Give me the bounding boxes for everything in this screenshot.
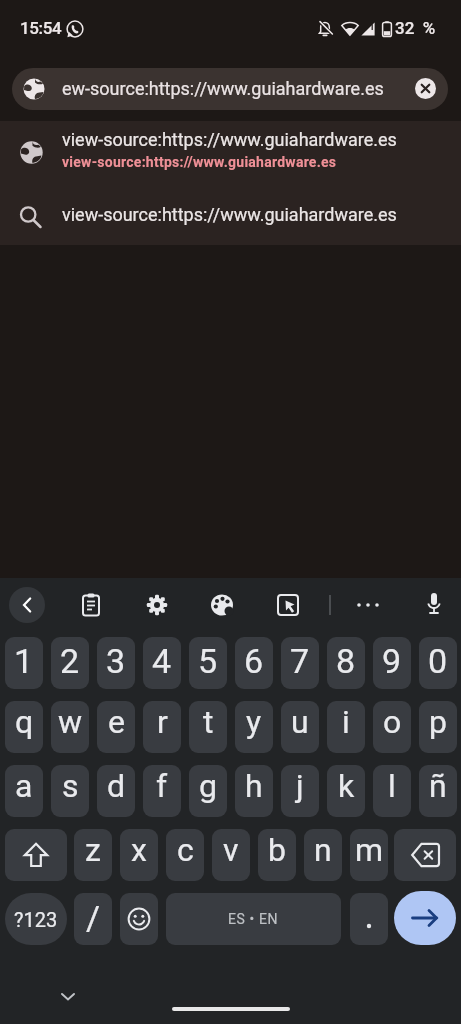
staticText: t bbox=[203, 703, 214, 741]
button[interactable]: k bbox=[327, 765, 365, 817]
button[interactable]: o bbox=[373, 701, 411, 753]
button[interactable]: view-source:https://www.guiahardware.es bbox=[0, 129, 461, 191]
button[interactable]: x bbox=[120, 829, 158, 881]
button[interactable]: 9 bbox=[373, 637, 411, 689]
staticText: j bbox=[296, 767, 304, 805]
staticText: 6 bbox=[244, 641, 264, 681]
button[interactable] bbox=[421, 591, 447, 617]
button[interactable]: ?123 bbox=[5, 893, 67, 945]
staticText: x bbox=[131, 831, 147, 869]
staticText: / bbox=[86, 898, 101, 938]
button[interactable]: 1 bbox=[5, 637, 43, 689]
staticText: 4 bbox=[152, 641, 172, 681]
button[interactable]: ew-source:https://www.guiahardware.es bbox=[12, 68, 448, 110]
button[interactable]: q bbox=[5, 701, 43, 753]
button[interactable]: f bbox=[143, 765, 181, 817]
button[interactable] bbox=[120, 893, 158, 945]
button[interactable]: 4 bbox=[143, 637, 181, 689]
button[interactable]: s bbox=[51, 765, 89, 817]
staticText: y bbox=[246, 703, 262, 741]
button[interactable]: 6 bbox=[235, 637, 273, 689]
button[interactable] bbox=[78, 592, 104, 618]
button[interactable]: ES • EN bbox=[166, 893, 341, 945]
button[interactable] bbox=[350, 893, 388, 945]
staticText: ?123 bbox=[14, 908, 58, 931]
button[interactable]: y bbox=[235, 701, 273, 753]
staticText: p bbox=[429, 703, 447, 741]
staticText: r bbox=[157, 703, 168, 741]
staticText: n bbox=[314, 831, 332, 869]
button[interactable] bbox=[144, 592, 170, 618]
button[interactable] bbox=[9, 587, 45, 623]
staticText: 3 bbox=[106, 641, 126, 681]
staticText: 7 bbox=[290, 641, 310, 681]
button[interactable]: / bbox=[74, 893, 112, 945]
staticText: a bbox=[15, 767, 33, 805]
button[interactable]: z bbox=[74, 829, 112, 881]
button[interactable]: g bbox=[189, 765, 227, 817]
button[interactable]: v bbox=[212, 829, 250, 881]
button[interactable]: n bbox=[304, 829, 342, 881]
button[interactable]: 3 bbox=[97, 637, 135, 689]
staticText: d bbox=[107, 767, 126, 805]
button[interactable]: a bbox=[5, 765, 43, 817]
button[interactable]: h bbox=[235, 765, 273, 817]
staticText: o bbox=[383, 703, 402, 741]
button[interactable] bbox=[5, 829, 67, 881]
button[interactable]: p bbox=[419, 701, 457, 753]
staticText: l bbox=[388, 767, 396, 805]
button[interactable]: e bbox=[97, 701, 135, 753]
button[interactable]: 2 bbox=[51, 637, 89, 689]
button[interactable] bbox=[394, 829, 456, 881]
button[interactable]: u bbox=[281, 701, 319, 753]
staticText: view-source:https://www.guiahardware.es bbox=[62, 204, 397, 225]
button[interactable]: d bbox=[97, 765, 135, 817]
button[interactable] bbox=[209, 592, 235, 618]
staticText: h bbox=[245, 767, 263, 805]
staticText: 2 bbox=[60, 641, 80, 681]
button[interactable]: 8 bbox=[327, 637, 365, 689]
staticText: ñ bbox=[429, 767, 447, 805]
staticText: 1 bbox=[14, 641, 34, 681]
button[interactable]: c bbox=[166, 829, 204, 881]
button[interactable]: r bbox=[143, 701, 181, 753]
staticText: 0 bbox=[428, 641, 448, 681]
staticText: 5 bbox=[198, 641, 218, 681]
staticText: m bbox=[355, 831, 384, 869]
staticText: e bbox=[108, 703, 125, 741]
button[interactable]: 7 bbox=[281, 637, 319, 689]
button[interactable]: 5 bbox=[189, 637, 227, 689]
button[interactable] bbox=[275, 592, 301, 618]
button[interactable]: w bbox=[51, 701, 89, 753]
staticText: w bbox=[58, 703, 83, 741]
staticText: i bbox=[342, 703, 350, 741]
staticText: z bbox=[85, 831, 101, 869]
button[interactable]: i bbox=[327, 701, 365, 753]
staticText: f bbox=[156, 767, 168, 805]
button[interactable]: l bbox=[373, 765, 411, 817]
button[interactable]: j bbox=[281, 765, 319, 817]
staticText: 15:54 bbox=[20, 18, 62, 38]
button[interactable]: ñ bbox=[419, 765, 457, 817]
staticText: 8 bbox=[336, 641, 356, 681]
button[interactable] bbox=[355, 592, 381, 618]
staticText: u bbox=[291, 703, 309, 741]
staticText: 9 bbox=[382, 641, 402, 681]
staticText: ew-source:https://www.guiahardware.es bbox=[62, 78, 384, 99]
button[interactable]: b bbox=[258, 829, 296, 881]
button[interactable] bbox=[48, 982, 88, 1012]
staticText: b bbox=[268, 831, 286, 869]
button[interactable]: 0 bbox=[419, 637, 457, 689]
staticText: 32 % bbox=[395, 18, 436, 38]
button[interactable] bbox=[415, 78, 436, 99]
button[interactable] bbox=[394, 891, 456, 945]
staticText: ES • EN bbox=[228, 911, 279, 927]
staticText: k bbox=[338, 767, 355, 805]
button[interactable]: t bbox=[189, 701, 227, 753]
staticText: g bbox=[199, 767, 217, 805]
button[interactable]: view-source:https://www.guiahardware.es bbox=[0, 195, 461, 245]
button[interactable]: m bbox=[350, 829, 388, 881]
staticText: view-source:https://www.guiahardware.es bbox=[62, 129, 397, 150]
staticText: c bbox=[177, 831, 194, 869]
staticText: view-source:https://www.guiahardware.es bbox=[62, 154, 337, 170]
